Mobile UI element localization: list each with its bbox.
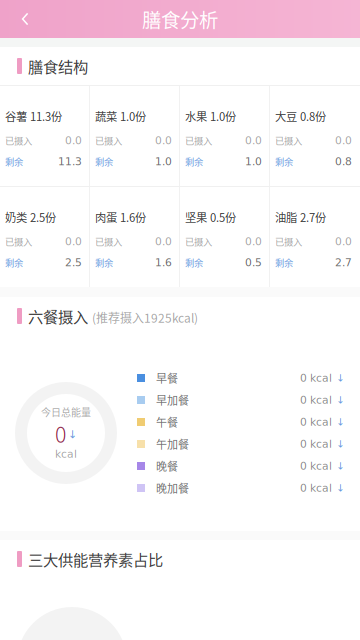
staticText: 大豆 0.8份 — [275, 108, 326, 124]
staticText: ↓ — [336, 438, 344, 450]
staticText: 膳食分析 — [142, 5, 218, 33]
staticText: 已摄入 — [95, 235, 122, 248]
staticText: 2.7 — [335, 256, 352, 269]
staticText: 剩余 — [275, 155, 293, 168]
staticText: 膳食结构 — [28, 55, 88, 77]
staticText: 早餐 — [156, 370, 178, 386]
staticText: 六餐摄入 — [28, 305, 88, 327]
staticText: ↓ — [336, 416, 344, 428]
staticText: 0.0 — [65, 134, 82, 147]
staticText: 0 kcal — [300, 460, 332, 472]
staticText: ↓ — [336, 482, 344, 494]
staticText: 0.5 — [245, 256, 262, 269]
staticText: 0 kcal — [300, 372, 332, 384]
staticText: (推荐摄入1925kcal) — [92, 309, 198, 326]
staticText: 0.0 — [155, 235, 172, 248]
staticText: 晚餐 — [156, 458, 178, 474]
staticText: 早加餐 — [156, 392, 189, 408]
staticText: 奶类 2.5份 — [5, 209, 56, 225]
staticText: 剩余 — [95, 155, 113, 168]
staticText: 0.8 — [335, 155, 352, 168]
staticText: 剩余 — [5, 155, 23, 168]
staticText: 剩余 — [275, 256, 293, 269]
staticText: 0.0 — [245, 235, 262, 248]
staticText: 已摄入 — [185, 235, 212, 248]
button[interactable]: Back — [0, 0, 44, 38]
staticText: 0.0 — [335, 134, 352, 147]
staticText: 剩余 — [5, 256, 23, 269]
staticText: 午餐 — [156, 414, 178, 430]
staticText: 剩余 — [95, 256, 113, 269]
staticText: 已摄入 — [5, 235, 32, 248]
staticText: 肉蛋 1.6份 — [95, 209, 146, 225]
staticText: 今日总能量 — [41, 405, 91, 419]
staticText: 坚果 0.5份 — [185, 209, 236, 225]
staticText: 0.0 — [335, 235, 352, 248]
staticText: 已摄入 — [275, 235, 302, 248]
staticText: 水果 1.0份 — [185, 108, 236, 124]
staticText: 0.0 — [65, 235, 82, 248]
staticText: 油脂 2.7份 — [275, 209, 326, 225]
staticText: 已摄入 — [275, 134, 302, 147]
staticText: 已摄入 — [5, 134, 32, 147]
staticText: 剩余 — [185, 155, 203, 168]
staticText: 0 kcal — [300, 416, 332, 428]
staticText: 0 kcal — [300, 394, 332, 406]
staticText: ↓ — [68, 428, 77, 441]
staticText: 0 kcal — [300, 482, 332, 494]
staticText: 0.0 — [245, 134, 262, 147]
staticText: 1.0 — [155, 155, 172, 168]
staticText: 11.3 — [58, 155, 82, 168]
staticText: 晚加餐 — [156, 480, 189, 496]
staticText: 0 — [55, 418, 66, 449]
staticText: 1.0 — [245, 155, 262, 168]
staticText: 2.5 — [65, 256, 82, 269]
staticText: kcal — [55, 448, 77, 460]
staticText: 蔬菜 1.0份 — [95, 108, 146, 124]
staticText: ↓ — [336, 394, 344, 406]
staticText: 谷薯 11.3份 — [5, 108, 62, 124]
staticText: 1.6 — [155, 256, 172, 269]
staticText: 0 kcal — [300, 438, 332, 450]
staticText: 已摄入 — [185, 134, 212, 147]
staticText: 0.0 — [155, 134, 172, 147]
staticText: ↓ — [336, 460, 344, 472]
staticText: 三大供能营养素占比 — [28, 548, 163, 570]
staticText: 剩余 — [185, 256, 203, 269]
staticText: 午加餐 — [156, 436, 189, 452]
staticText: ↓ — [336, 372, 344, 384]
staticText: 已摄入 — [95, 134, 122, 147]
